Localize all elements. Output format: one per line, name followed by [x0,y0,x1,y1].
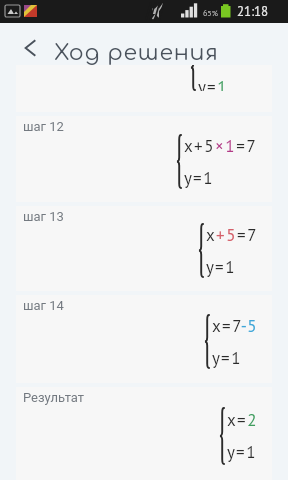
staticText: y = 1 [184,167,213,189]
button[interactable]: шаг 13 [16,206,272,291]
staticText: x = 2 [227,409,257,431]
button[interactable]: Результат [16,387,272,480]
staticText: y = 1 [227,441,256,463]
button[interactable]: шаг 14 [16,295,272,383]
staticText: 65% [203,8,218,18]
staticText: 21:18 [237,3,269,20]
staticText: шаг 14 [23,298,64,313]
staticText: x + 5 = 7 [206,224,257,246]
staticText: y = 1 [198,76,227,91]
button[interactable]: Back [14,35,40,61]
staticText: y = 1 [206,256,235,278]
staticText: y = 1 [212,347,241,369]
staticText: x + 5 × 1 = 7 [184,135,257,157]
staticText: Результат [23,390,85,405]
button[interactable]: шаг 12 [16,116,272,202]
staticText: шаг 12 [23,119,64,134]
staticText: x = 7 - 5 [212,315,257,337]
staticText: Ход решения [54,41,219,66]
staticText: шаг 13 [23,209,64,224]
button[interactable]: x + 5y = 7 [16,65,272,112]
